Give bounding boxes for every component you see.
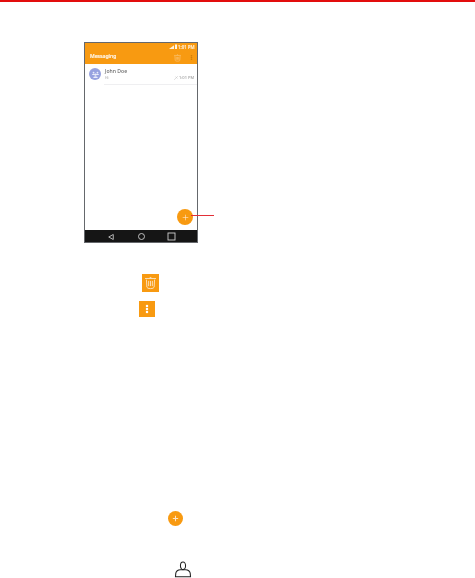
button[interactable]: More options (186, 52, 196, 62)
button[interactable]: New message (168, 511, 183, 526)
button[interactable]: Back (105, 231, 116, 242)
button[interactable]: New message (177, 209, 193, 225)
button[interactable]: Home (136, 231, 147, 242)
button[interactable]: Delete (142, 274, 159, 292)
staticText: John Doe (105, 68, 128, 75)
button[interactable]: Delete (172, 52, 183, 63)
staticText: 1:01 PM (178, 44, 195, 50)
staticText: Messaging (90, 53, 117, 60)
button[interactable]: More options (139, 301, 155, 317)
button[interactable]: Recents (166, 231, 177, 242)
staticText: 1:01 PM (179, 75, 195, 80)
staticText: Hi (105, 75, 109, 80)
button[interactable]: Contact (175, 561, 191, 577)
button[interactable]: John Doe (85, 64, 197, 84)
